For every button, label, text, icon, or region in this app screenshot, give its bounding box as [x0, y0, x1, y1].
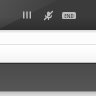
button[interactable]: Hold call [20, 8, 34, 22]
staticText: END [64, 13, 74, 19]
button[interactable]: END [62, 12, 76, 19]
button[interactable]: Mute microphone [41, 8, 55, 22]
button[interactable] [0, 45, 96, 63]
button[interactable] [0, 30, 96, 45]
